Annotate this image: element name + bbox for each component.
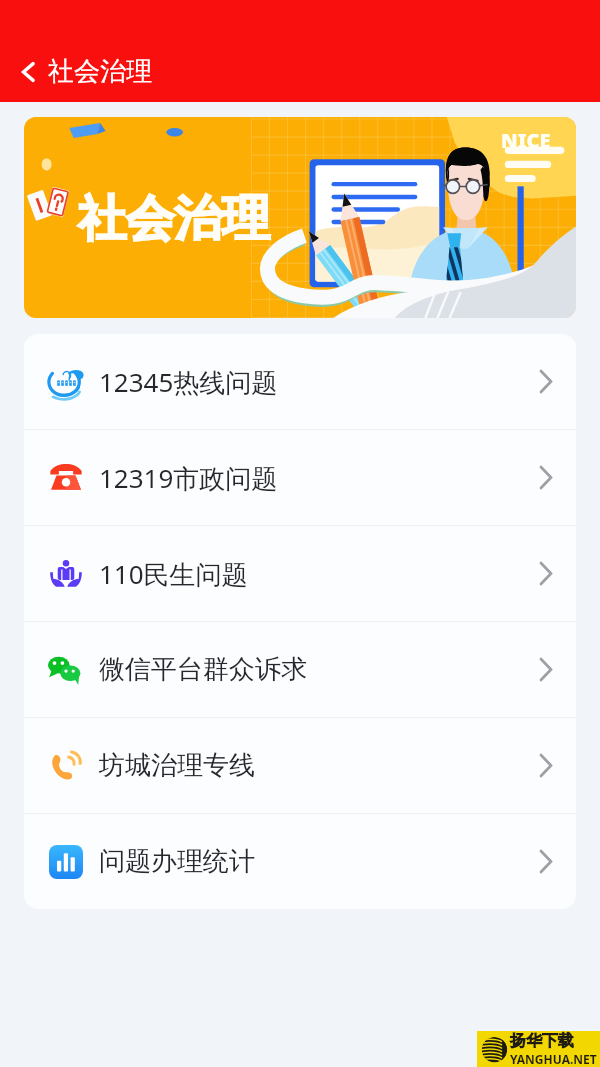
button[interactable]: 12319市政问题 <box>24 430 576 525</box>
staticText: 社会治理 <box>48 55 152 88</box>
button[interactable]: Back <box>10 49 164 94</box>
other: Back <box>20 58 36 86</box>
button[interactable]: 微信平台群众诉求 <box>24 622 576 717</box>
button[interactable]: 坊城治理专线 <box>24 718 576 813</box>
staticText: NICE <box>501 127 551 154</box>
staticText: 12345热线问题 <box>99 364 278 400</box>
staticText: 12319市政问题 <box>99 460 278 496</box>
button[interactable]: 问题办理统计 <box>24 814 576 909</box>
button[interactable]: 110民生问题 <box>24 526 576 621</box>
staticText: 坊城治理专线 <box>99 749 255 782</box>
staticText: YANGHUA.NET <box>510 1051 597 1067</box>
staticText: 110民生问题 <box>99 556 248 592</box>
staticText: 问题办理统计 <box>99 845 255 878</box>
button[interactable]: 社会治理 <box>24 117 576 318</box>
staticText: 扬华下载 <box>510 1031 574 1051</box>
staticText: 社会治理 <box>78 189 270 249</box>
staticText: 微信平台群众诉求 <box>99 653 307 686</box>
button[interactable]: 12345热线问题 <box>24 334 576 429</box>
